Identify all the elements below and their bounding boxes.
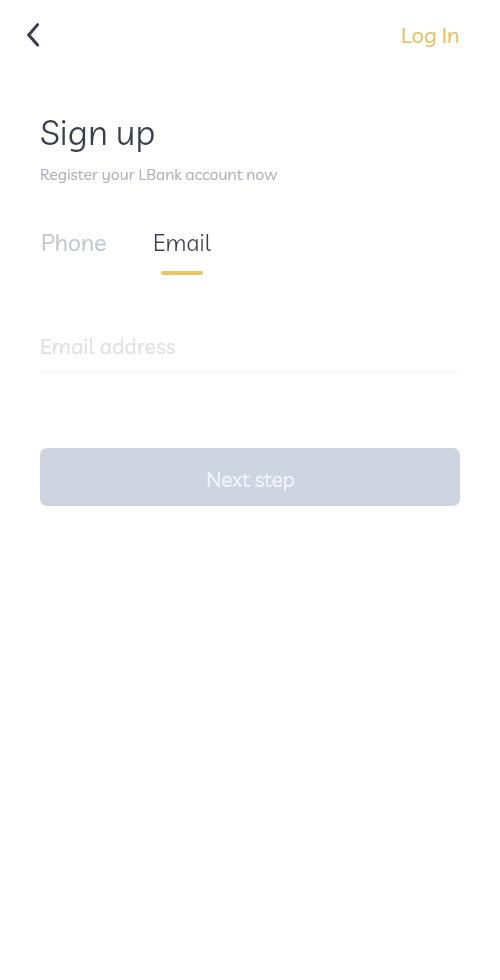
button[interactable]: Email address [40, 326, 460, 374]
staticText: Register your LBank account now [40, 164, 278, 184]
button[interactable]: Log In [389, 13, 472, 57]
button[interactable]: Back [7, 10, 55, 58]
staticText: Email address [40, 333, 176, 359]
staticText: Next step [206, 466, 295, 492]
button[interactable]: Phone [41, 228, 107, 275]
staticText: Email [153, 228, 211, 257]
button[interactable]: Email [153, 228, 211, 275]
staticText: Log In [401, 21, 460, 49]
staticText: Phone [41, 228, 107, 257]
button[interactable]: Next step [40, 448, 460, 506]
staticText: Sign up [40, 110, 156, 154]
